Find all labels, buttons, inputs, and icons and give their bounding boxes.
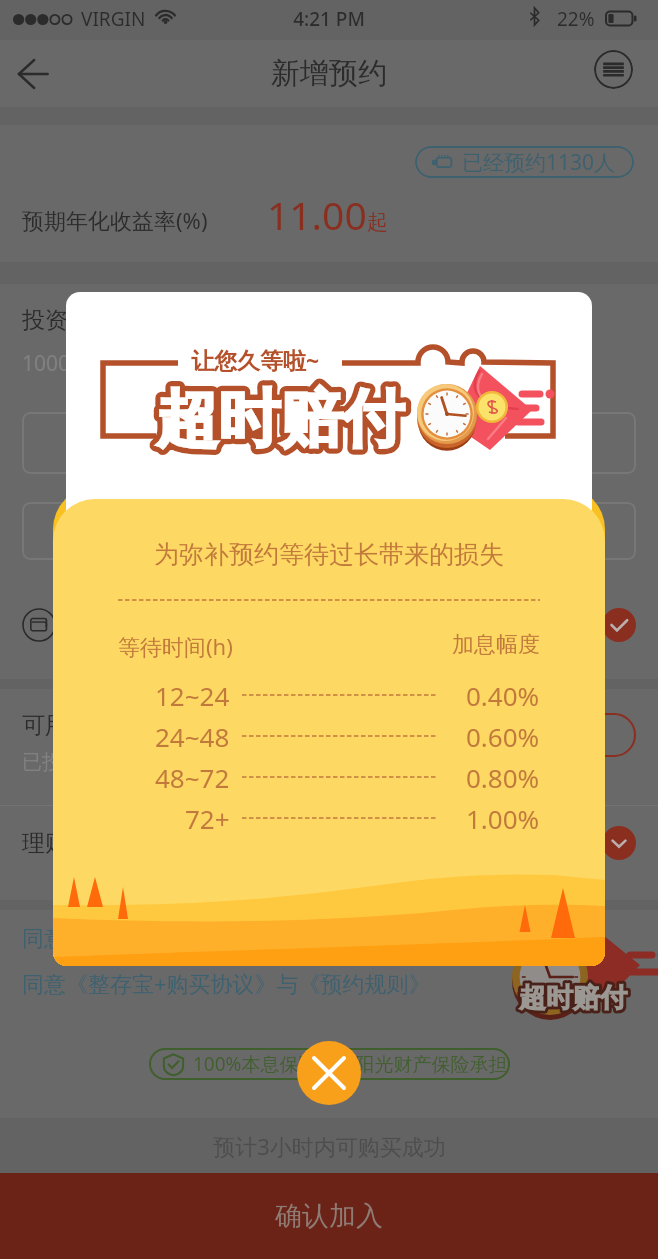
staticText: 投资金额 — [22, 306, 114, 335]
staticText: 超时赔付 — [519, 981, 627, 1015]
staticText: 0.80% — [466, 760, 540, 795]
staticText: 1.00% — [466, 801, 540, 836]
button[interactable]: Close — [297, 1041, 361, 1105]
staticText: 新增预约 — [271, 55, 387, 92]
staticText: 可用余额 — [22, 711, 114, 740]
staticText: 同意《整存宝+购买协议》与《预约规则》 — [22, 968, 431, 998]
staticText: 已投入资金 — [22, 750, 122, 775]
staticText: 等待时间(h) — [118, 631, 233, 661]
button[interactable] — [22, 502, 636, 560]
staticText: 0.40% — [466, 678, 540, 713]
button[interactable] — [22, 412, 636, 474]
staticText: 100%本息保障，由阳光财产保险承担 — [193, 1051, 508, 1077]
staticText: 预计3小时内可购买成功 — [213, 1131, 446, 1161]
staticText: 超时赔付 — [156, 380, 404, 458]
staticText: 起 — [367, 209, 388, 235]
staticText: 48~72 — [155, 760, 230, 795]
button[interactable]: 超时赔付 — [500, 925, 658, 1025]
staticText: 为弥补预约等待过长带来的损失 — [53, 539, 605, 570]
button[interactable]: 已经预约1130人 — [415, 146, 634, 178]
button[interactable]: Back — [5, 46, 61, 102]
staticText: 已经预约1130人 — [462, 148, 616, 177]
button[interactable] — [22, 594, 636, 656]
staticText: 24~48 — [155, 719, 230, 754]
staticText: 预期年化收益率(%) — [22, 205, 208, 235]
staticText: 1000元起投 — [22, 349, 134, 378]
staticText: 22% — [557, 6, 595, 32]
button[interactable]: 100%本息保障，由阳光财产保险承担 — [149, 1048, 510, 1080]
staticText: 超时赔付 — [519, 981, 627, 1015]
staticText: 确认加入 — [275, 1199, 383, 1233]
staticText: 同意《整存宝+购买协议》与《预约规则》 — [22, 922, 431, 952]
button[interactable]: 确认加入 — [0, 1173, 658, 1259]
staticText: 11.00 — [267, 188, 367, 241]
staticText: 超时赔付 — [156, 380, 404, 458]
staticText: 4:21 PM — [0, 6, 658, 32]
button[interactable]: 理财计划 — [22, 826, 636, 860]
staticText: 理财计划 — [22, 829, 114, 858]
button[interactable]: 可用余额 — [22, 711, 636, 775]
staticText: 加息幅度 — [452, 631, 540, 659]
staticText: 0.60% — [466, 719, 540, 754]
button[interactable]: Menu — [594, 50, 633, 89]
staticText: VIRGIN — [81, 6, 146, 32]
staticText: 让您久等啦~ — [191, 344, 320, 375]
staticText: 12~24 — [155, 678, 230, 713]
staticText: 72+ — [185, 801, 230, 836]
